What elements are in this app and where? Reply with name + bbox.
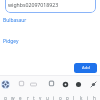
staticText: w bbox=[11, 95, 15, 100]
button[interactable]: i bbox=[53, 95, 55, 100]
button[interactable]: Pidgey bbox=[3, 38, 19, 45]
button[interactable]: l bbox=[73, 95, 75, 100]
staticText: o bbox=[59, 95, 62, 100]
button[interactable]: Voice input bbox=[90, 81, 97, 88]
button[interactable]: q bbox=[4, 95, 7, 100]
button[interactable]: Stickers bbox=[18, 80, 25, 87]
button[interactable]: Emoji bbox=[75, 81, 82, 88]
staticText: y bbox=[39, 95, 42, 100]
staticText: p bbox=[66, 95, 69, 100]
button[interactable]: GIF bbox=[30, 81, 37, 88]
button[interactable]: Google Lens bbox=[1, 80, 10, 89]
button[interactable]: u bbox=[46, 95, 49, 100]
staticText: i bbox=[53, 95, 55, 100]
button[interactable]: o bbox=[59, 95, 62, 100]
button[interactable]: h bbox=[93, 95, 96, 100]
staticText: u bbox=[46, 95, 49, 100]
button[interactable]: j bbox=[87, 95, 89, 100]
staticText: Bulbasaur bbox=[3, 17, 27, 24]
button[interactable]: Bulbasaur bbox=[3, 17, 27, 24]
button[interactable]: t bbox=[33, 95, 35, 100]
button[interactable]: r bbox=[27, 95, 29, 100]
staticText: wighbs02097018923 bbox=[8, 1, 59, 8]
button[interactable]: p bbox=[66, 95, 69, 100]
staticText: r bbox=[27, 95, 29, 100]
button[interactable]: w bbox=[11, 95, 15, 100]
button[interactable]: Add bbox=[74, 63, 97, 73]
staticText: h bbox=[93, 95, 96, 100]
staticText: e bbox=[19, 95, 22, 100]
button[interactable]: wighbs02097018923 bbox=[5, 0, 96, 13]
button[interactable]: e bbox=[19, 95, 22, 100]
button[interactable]: Clipboard bbox=[48, 80, 55, 87]
staticText: t bbox=[33, 95, 35, 100]
staticText: Add bbox=[82, 65, 90, 71]
button[interactable]: k bbox=[80, 95, 83, 100]
staticText: j bbox=[87, 95, 89, 100]
button[interactable]: Settings bbox=[62, 81, 69, 88]
button[interactable]: y bbox=[39, 95, 42, 100]
staticText: l bbox=[73, 95, 75, 100]
staticText: q bbox=[4, 95, 7, 100]
staticText: Pidgey bbox=[3, 38, 19, 45]
staticText: k bbox=[80, 95, 83, 100]
